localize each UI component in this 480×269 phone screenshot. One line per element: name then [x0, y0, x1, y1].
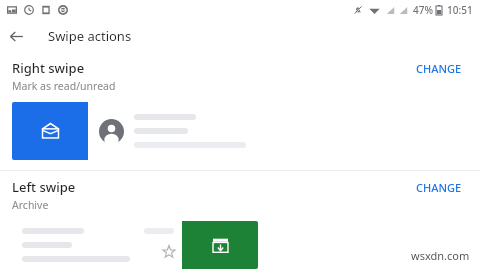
- staticText: Right swipe: [12, 59, 85, 77]
- staticText: Mark as read/unread: [12, 79, 116, 93]
- staticText: 47%: [413, 3, 433, 17]
- button[interactable]: Back: [0, 20, 32, 52]
- button[interactable]: [12, 102, 258, 160]
- staticText: wsxdn.com: [411, 248, 470, 263]
- staticText: Swipe actions: [48, 27, 132, 45]
- staticText: Left swipe: [12, 178, 76, 196]
- staticText: CHANGE: [416, 180, 462, 195]
- button[interactable]: CHANGE: [408, 178, 470, 197]
- staticText: CHANGE: [416, 61, 462, 76]
- button[interactable]: CHANGE: [408, 59, 470, 78]
- staticText: Archive: [12, 198, 49, 212]
- staticText: 10:51: [447, 3, 473, 17]
- button[interactable]: [12, 221, 258, 269]
